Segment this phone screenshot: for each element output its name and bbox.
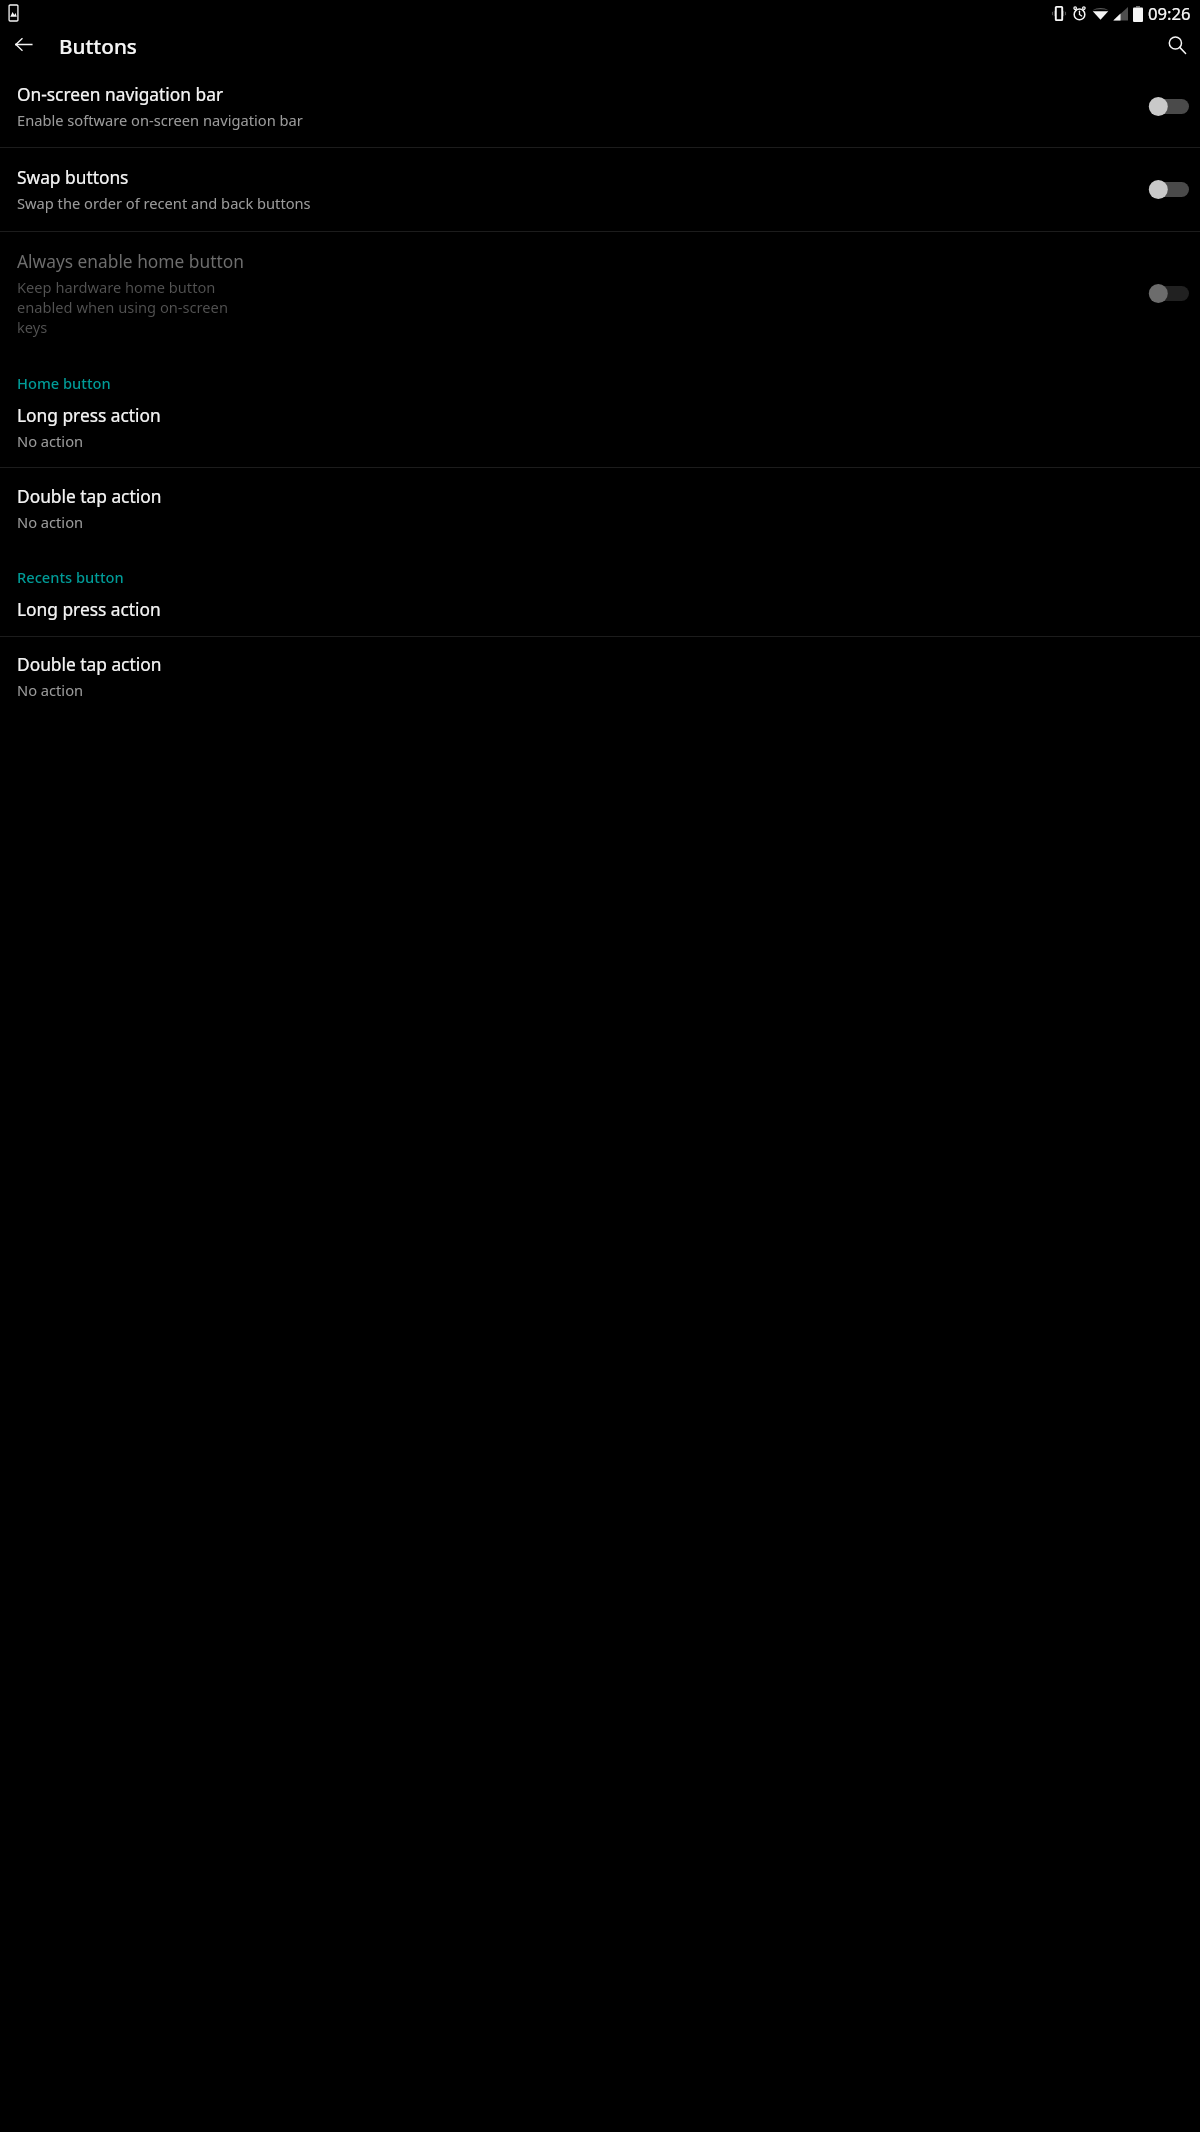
staticText: 09:26: [1148, 2, 1191, 25]
staticText: Enable software on-screen navigation bar: [17, 110, 303, 130]
button[interactable]: Long press action: [0, 587, 1200, 636]
button[interactable]: Toggle: [1146, 280, 1191, 307]
staticText: Double tap action: [17, 652, 162, 676]
staticText: Always enable home button: [17, 249, 244, 273]
staticText: Keep hardware home button enabled when u…: [17, 277, 244, 337]
staticText: No action: [17, 512, 84, 532]
staticText: No action: [17, 431, 84, 451]
staticText: Double tap action: [17, 484, 162, 508]
staticText: Home button: [17, 373, 111, 393]
button[interactable]: Swap buttons: [0, 148, 1200, 231]
button[interactable]: Double tap action: [0, 637, 1200, 707]
button[interactable]: Search: [1160, 28, 1193, 61]
staticText: Long press action: [17, 403, 161, 427]
staticText: On-screen navigation bar: [17, 82, 224, 106]
button[interactable]: Long press action: [0, 393, 1200, 467]
button[interactable]: On-screen navigation bar: [0, 63, 1200, 147]
staticText: Swap buttons: [17, 165, 129, 189]
staticText: Recents button: [17, 567, 124, 587]
button[interactable]: Back: [7, 28, 40, 61]
button[interactable]: Always enable home button: [0, 232, 1200, 354]
staticText: Buttons: [59, 32, 137, 60]
button[interactable]: Double tap action: [0, 468, 1200, 548]
button[interactable]: Toggle: [1146, 176, 1191, 203]
staticText: Long press action: [17, 597, 161, 621]
staticText: No action: [17, 680, 84, 700]
button[interactable]: Toggle: [1146, 93, 1191, 120]
staticText: Swap the order of recent and back button…: [17, 193, 311, 213]
